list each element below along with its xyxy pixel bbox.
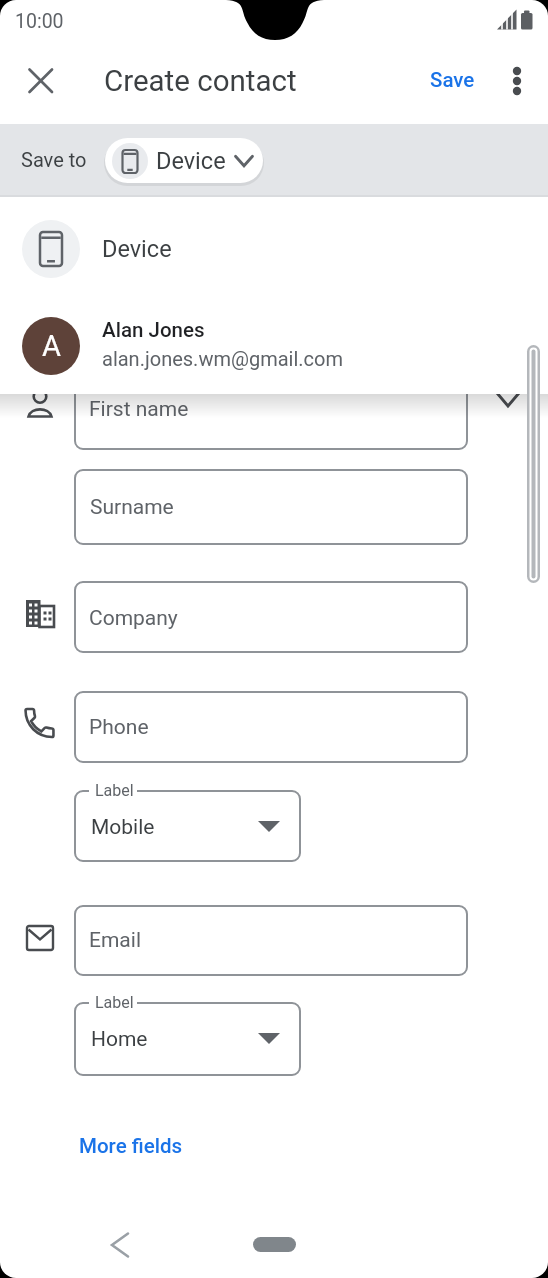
button[interactable]	[100, 1225, 144, 1265]
staticText: Company	[89, 606, 178, 631]
staticText: alan.jones.wm@gmail.com	[102, 347, 343, 370]
staticText: Label	[95, 781, 134, 800]
staticText: Email	[89, 928, 141, 953]
staticText: Save	[430, 68, 475, 92]
staticText: Device	[156, 147, 226, 175]
staticText: Phone	[89, 715, 149, 740]
button[interactable]	[74, 1124, 234, 1168]
button[interactable]	[105, 138, 263, 183]
staticText: First name	[89, 397, 189, 422]
staticText: 10:00	[15, 10, 64, 33]
staticText: A	[42, 329, 61, 363]
button[interactable]	[22, 63, 60, 101]
button[interactable]	[74, 581, 468, 653]
staticText: Save to	[21, 148, 87, 171]
button[interactable]	[499, 62, 537, 100]
button[interactable]	[253, 1237, 296, 1252]
staticText: Device	[102, 235, 172, 263]
staticText: Label	[95, 993, 134, 1012]
staticText: Alan Jones	[102, 318, 205, 342]
staticText: More fields	[79, 1134, 183, 1158]
button[interactable]	[74, 469, 468, 545]
button[interactable]	[74, 691, 468, 763]
staticText: Surname	[90, 495, 174, 520]
staticText: Home	[91, 1027, 148, 1052]
button[interactable]	[0, 212, 548, 286]
button[interactable]	[74, 905, 468, 976]
button[interactable]	[0, 303, 548, 389]
staticText: Mobile	[91, 815, 155, 840]
button[interactable]	[74, 377, 468, 450]
button[interactable]	[422, 62, 482, 100]
button[interactable]	[488, 384, 532, 416]
button[interactable]	[74, 1002, 301, 1076]
staticText: Create contact	[104, 64, 297, 99]
button[interactable]	[74, 790, 301, 862]
